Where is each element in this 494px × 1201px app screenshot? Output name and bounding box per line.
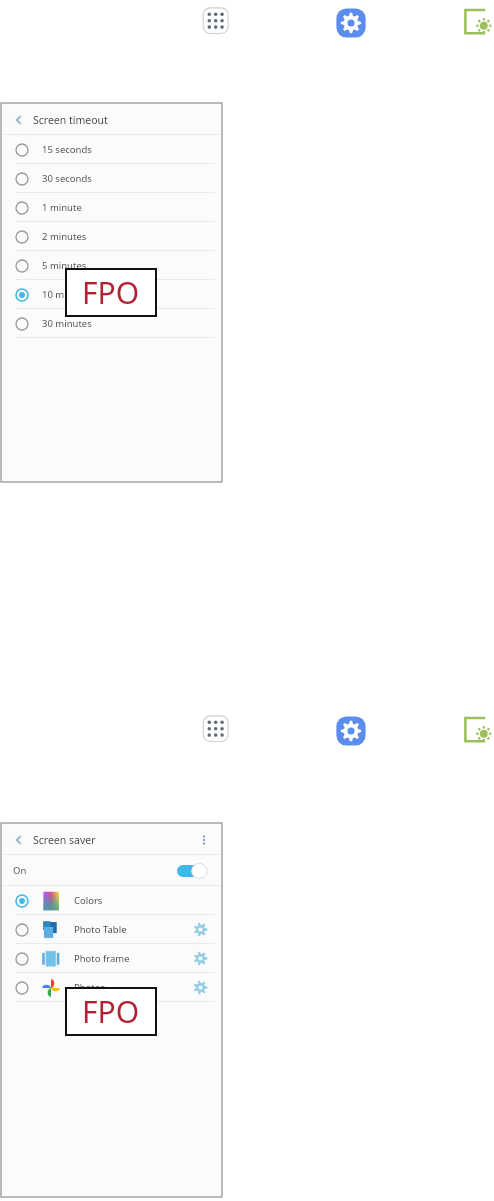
staticText: 1 minute <box>42 201 82 214</box>
button[interactable]: Settings for Photo Table <box>193 922 208 937</box>
button[interactable]: Back <box>2 824 221 855</box>
staticText: Screen saver <box>33 833 96 847</box>
button[interactable]: 1 minute <box>2 193 221 222</box>
button[interactable]: 10 minutes <box>2 280 221 309</box>
button[interactable]: Back <box>2 104 221 135</box>
staticText: FPO <box>82 991 140 1032</box>
staticText: 5 minutes <box>42 259 87 272</box>
button[interactable]: Photos <box>2 973 221 1002</box>
staticText: Photos <box>74 981 106 994</box>
button[interactable]: More options <box>195 831 213 849</box>
button[interactable]: 30 minutes <box>2 309 221 338</box>
button[interactable]: 30 seconds <box>2 164 221 193</box>
button[interactable]: Display settings <box>460 6 494 40</box>
button[interactable]: Settings for Photos <box>193 980 208 995</box>
other: Back <box>13 114 25 126</box>
button[interactable]: Apps <box>200 6 232 38</box>
button[interactable]: Screen saver on <box>177 863 207 879</box>
button[interactable]: Apps <box>200 714 232 746</box>
button[interactable]: Colors <box>2 886 221 915</box>
staticText: FPO <box>82 272 140 313</box>
staticText: 2 minutes <box>42 230 87 243</box>
button[interactable]: Photo frame <box>2 944 221 973</box>
staticText: Colors <box>74 894 103 907</box>
staticText: On <box>13 864 27 877</box>
staticText: Photo frame <box>74 952 130 965</box>
button[interactable]: Display settings <box>460 714 494 748</box>
button[interactable]: 5 minutes <box>2 251 221 280</box>
other: Back <box>13 834 25 846</box>
staticText: 30 seconds <box>42 172 92 185</box>
staticText: Screen timeout <box>33 113 108 127</box>
button[interactable]: 2 minutes <box>2 222 221 251</box>
button[interactable]: Settings for Photo frame <box>193 951 208 966</box>
button[interactable]: Photo Table <box>2 915 221 944</box>
button[interactable]: Settings <box>334 6 368 40</box>
staticText: 30 minutes <box>42 317 92 330</box>
staticText: 10 minutes <box>42 288 92 301</box>
button[interactable]: 15 seconds <box>2 135 221 164</box>
staticText: Photo Table <box>74 923 127 936</box>
button[interactable]: Settings <box>334 714 368 748</box>
button[interactable]: On <box>2 855 221 886</box>
staticText: 15 seconds <box>42 143 92 156</box>
